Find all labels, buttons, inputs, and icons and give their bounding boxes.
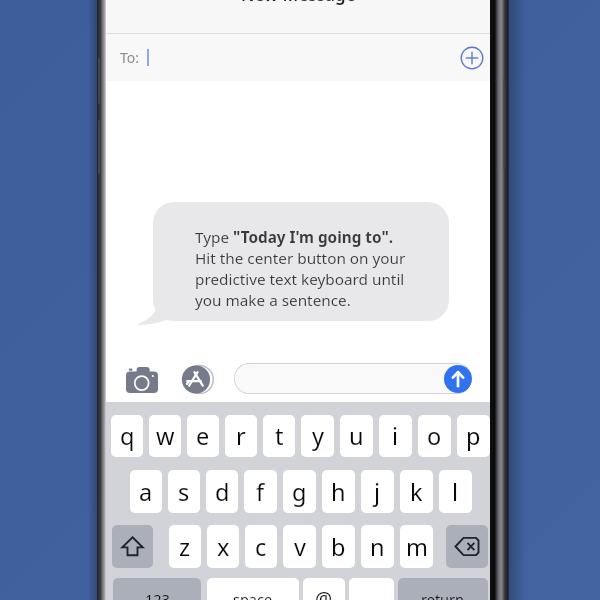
staticText: y [312, 420, 324, 452]
button[interactable]: k [400, 470, 433, 513]
button[interactable]: q [111, 415, 143, 457]
button[interactable]: b [322, 525, 355, 568]
staticText: o [427, 420, 442, 452]
button[interactable]: w [149, 415, 181, 457]
staticText: j [374, 476, 381, 508]
button[interactable]: @ [303, 578, 345, 600]
button[interactable]: a [130, 470, 162, 513]
button[interactable]: Send [444, 365, 472, 393]
staticText: t [275, 420, 284, 452]
staticText: e [196, 420, 210, 452]
staticText: h [331, 476, 346, 508]
button[interactable]: return [398, 578, 488, 600]
staticText: c [255, 531, 267, 563]
button[interactable]: x [207, 525, 239, 568]
button[interactable]: App Store [182, 364, 213, 395]
button[interactable]: z [169, 525, 201, 568]
staticText: b [331, 531, 346, 563]
button[interactable]: f [244, 470, 277, 513]
staticText: Hit the center button on your [195, 248, 406, 269]
button[interactable]: Add contact [460, 46, 484, 70]
button[interactable]: g [283, 470, 316, 513]
button[interactable]: s [168, 470, 200, 513]
staticText: To: [120, 48, 140, 67]
button[interactable]: space [207, 578, 299, 600]
button[interactable]: m [400, 525, 433, 568]
staticText: n [370, 531, 385, 563]
button[interactable]: r [225, 415, 257, 457]
staticText: v [294, 531, 306, 563]
button[interactable]: u [340, 415, 373, 457]
staticText: i [392, 420, 399, 452]
button[interactable]: Camera [126, 367, 158, 393]
button[interactable]: t [263, 415, 295, 457]
button[interactable]: i [379, 415, 412, 457]
button[interactable]: . [349, 578, 394, 600]
button[interactable]: d [206, 470, 238, 513]
button[interactable]: h [322, 470, 355, 513]
staticText: return [421, 589, 465, 600]
button[interactable]: To recipient field [106, 34, 490, 81]
staticText: p [466, 420, 481, 452]
staticText: predictive text keyboard until [195, 269, 405, 290]
button[interactable]: p [457, 415, 490, 457]
button[interactable]: o [418, 415, 451, 457]
button[interactable]: Backspace [446, 525, 488, 568]
staticText: w [156, 420, 175, 452]
button[interactable]: 123 [113, 578, 201, 600]
staticText: l [452, 476, 459, 508]
staticText: a [139, 476, 153, 508]
button[interactable]: y [301, 415, 334, 457]
button[interactable]: j [361, 470, 394, 513]
button[interactable]: l [439, 470, 472, 513]
staticText: @ [315, 586, 333, 600]
button[interactable]: n [361, 525, 394, 568]
button[interactable]: Shift [112, 525, 153, 568]
staticText: q [120, 420, 135, 452]
staticText: space [233, 589, 273, 600]
button[interactable]: e [187, 415, 219, 457]
staticText: s [178, 476, 190, 508]
button[interactable]: v [283, 525, 316, 568]
staticText: r [236, 420, 246, 452]
staticText: d [215, 476, 230, 508]
staticText: z [179, 531, 191, 563]
button[interactable]: c [245, 525, 277, 568]
staticText: Type "Today I'm going to". [195, 227, 394, 248]
staticText: 123 [145, 589, 170, 600]
staticText: k [410, 476, 423, 508]
staticText: u [349, 420, 364, 452]
staticText: x [217, 531, 230, 563]
staticText: New Message [241, 0, 356, 6]
staticText: m [406, 531, 428, 563]
staticText: f [256, 476, 265, 508]
staticText: g [292, 476, 307, 508]
button[interactable]: Send [234, 363, 472, 394]
staticText: you make a sentence. [195, 290, 351, 311]
